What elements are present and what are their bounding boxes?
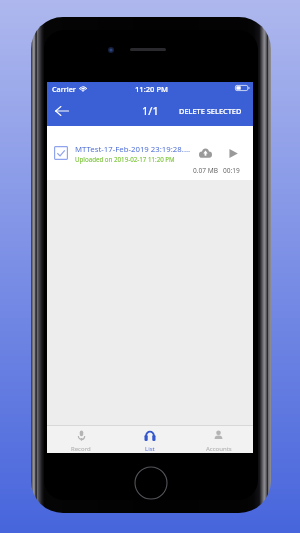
staticText: Uploaded on 2019-02-17 11:20 PM [75, 155, 175, 163]
staticText: 00:19 [223, 166, 240, 175]
button[interactable]: Selected [53, 145, 69, 161]
button[interactable]: Back [47, 95, 77, 126]
button[interactable]: Record [47, 426, 115, 453]
button[interactable]: Accounts [184, 426, 253, 453]
button[interactable]: Upload [195, 143, 215, 163]
staticText: 11:20 PM [135, 84, 169, 94]
staticText: Carrier [52, 84, 76, 94]
button[interactable]: DELETE SELECTED [173, 95, 253, 126]
staticText: Accounts [206, 445, 232, 453]
button[interactable]: Selected [47, 126, 253, 180]
staticText: DELETE SELECTED [179, 106, 242, 116]
staticText: Record [71, 445, 91, 453]
staticText: 0.07 MB [193, 166, 219, 175]
staticText: MTTest-17-Feb-2019 23:19:28.... [75, 144, 191, 155]
staticText: List [145, 445, 155, 453]
button[interactable]: Play [224, 144, 242, 162]
staticText: 1/1 [142, 103, 159, 118]
button[interactable]: List [115, 426, 184, 453]
